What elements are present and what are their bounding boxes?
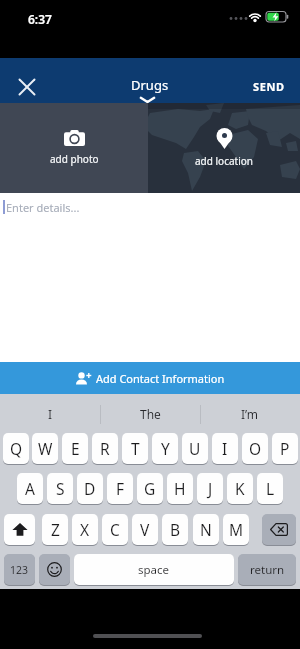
button[interactable]: S xyxy=(47,473,73,504)
staticText: C xyxy=(110,519,120,540)
button[interactable]: R xyxy=(92,433,118,464)
button[interactable]: Add Contact Information xyxy=(0,362,300,394)
staticText: S xyxy=(56,478,65,499)
button[interactable]: T xyxy=(122,433,148,464)
staticText: V xyxy=(140,519,150,540)
button[interactable]: L xyxy=(257,473,283,504)
staticText: A xyxy=(25,478,35,499)
button[interactable]: Z xyxy=(42,514,68,545)
staticText: H xyxy=(174,478,186,499)
staticText: Add Contact Information xyxy=(96,371,225,386)
staticText: L xyxy=(266,478,275,499)
staticText: 6:37 xyxy=(28,11,52,27)
button[interactable]: add photo xyxy=(0,103,148,193)
staticText: E xyxy=(71,438,80,459)
staticText: I xyxy=(222,438,228,459)
button[interactable]: return xyxy=(238,554,296,585)
button[interactable]: I’m xyxy=(200,402,300,426)
staticText: space xyxy=(138,562,170,578)
button[interactable] xyxy=(262,514,296,545)
staticText: O xyxy=(249,438,262,459)
button[interactable]: F xyxy=(107,473,133,504)
button[interactable]: Drugs xyxy=(131,76,169,94)
staticText: The xyxy=(140,406,161,422)
staticText: W xyxy=(38,438,53,459)
staticText: P xyxy=(280,438,290,459)
button[interactable]: A xyxy=(17,473,43,504)
button[interactable]: V xyxy=(132,514,158,545)
button[interactable]: add location xyxy=(148,103,300,193)
button[interactable]: P xyxy=(272,433,298,464)
staticText: Enter details... xyxy=(6,200,80,215)
button[interactable]: H xyxy=(167,473,193,504)
button[interactable]: E xyxy=(62,433,88,464)
button[interactable]: N xyxy=(193,514,219,545)
staticText: I’m xyxy=(241,406,259,422)
button[interactable]: D xyxy=(77,473,103,504)
button[interactable]: B xyxy=(162,514,188,545)
button[interactable]: U xyxy=(182,433,208,464)
staticText: T xyxy=(131,438,140,459)
staticText: Y xyxy=(161,438,170,459)
staticText: K xyxy=(235,478,245,499)
staticText: B xyxy=(170,519,181,540)
staticText: 123 xyxy=(10,563,29,577)
button[interactable]: O xyxy=(242,433,268,464)
staticText: I xyxy=(48,406,53,422)
staticText: M xyxy=(229,519,244,540)
button[interactable]: I xyxy=(212,433,238,464)
button[interactable]: X xyxy=(72,514,98,545)
button[interactable]: SEND xyxy=(246,77,292,95)
button[interactable]: K xyxy=(227,473,253,504)
staticText: F xyxy=(116,478,125,499)
staticText: add location xyxy=(195,154,253,168)
button[interactable]: The xyxy=(100,402,200,426)
button[interactable]: Q xyxy=(3,433,29,464)
staticText: J xyxy=(208,478,213,499)
staticText: SEND xyxy=(253,79,285,94)
staticText: D xyxy=(84,478,96,499)
staticText: return xyxy=(250,562,285,578)
button[interactable] xyxy=(39,554,70,585)
staticText: R xyxy=(100,438,110,459)
button[interactable]: W xyxy=(32,433,58,464)
button[interactable]: Y xyxy=(152,433,178,464)
staticText: G xyxy=(144,478,156,499)
staticText: add photo xyxy=(50,152,99,166)
button[interactable]: J xyxy=(197,473,223,504)
staticText: Q xyxy=(10,438,23,459)
button[interactable]: M xyxy=(223,514,249,545)
staticText: Drugs xyxy=(131,76,169,94)
staticText: N xyxy=(200,519,212,540)
button[interactable] xyxy=(4,514,35,545)
staticText: U xyxy=(189,438,201,459)
staticText: Z xyxy=(51,519,60,540)
button[interactable]: C xyxy=(102,514,128,545)
button[interactable]: 123 xyxy=(4,554,35,585)
button[interactable]: I xyxy=(0,402,100,426)
staticText: X xyxy=(80,519,90,540)
button[interactable]: space xyxy=(74,554,234,585)
button[interactable]: G xyxy=(137,473,163,504)
button[interactable] xyxy=(11,71,43,103)
